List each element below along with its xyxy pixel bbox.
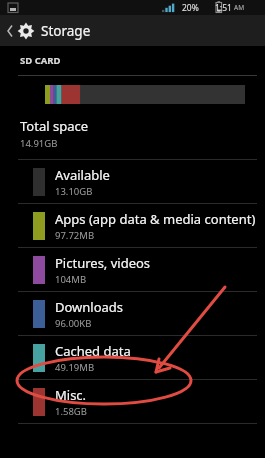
staticText: 1:51 (215, 2, 232, 14)
staticText: 13.10GB (55, 185, 93, 198)
button[interactable]: Pictures, videos (0, 248, 265, 291)
staticText: Total space (20, 117, 88, 135)
other: Back to Settings (0, 16, 34, 46)
staticText: 49.19MB (55, 361, 95, 374)
button[interactable]: Apps (app data & media content) (0, 204, 265, 247)
staticText: 14.91GB (20, 137, 58, 150)
staticText: SD CARD (20, 54, 61, 67)
button[interactable]: Back to Settings (0, 15, 265, 46)
button[interactable]: Cached data (0, 336, 265, 379)
button[interactable]: Misc. (0, 380, 265, 423)
staticText: Available (55, 166, 110, 184)
button[interactable]: Downloads (0, 292, 265, 335)
staticText: Cached data (55, 342, 131, 360)
staticText: Pictures, videos (55, 254, 151, 272)
staticText: 97.72MB (55, 229, 95, 242)
staticText: Apps (app data & media content) (55, 210, 256, 228)
staticText: Misc. (55, 386, 87, 404)
staticText: AM (234, 3, 245, 12)
button[interactable]: Total space (0, 114, 265, 159)
staticText: 20% (182, 2, 199, 14)
button[interactable]: Available (0, 160, 265, 203)
staticText: 1.58GB (55, 405, 87, 418)
staticText: Downloads (55, 298, 124, 316)
staticText: 96.00KB (55, 317, 92, 330)
staticText: Storage (41, 22, 91, 40)
staticText: 104MB (55, 273, 87, 286)
